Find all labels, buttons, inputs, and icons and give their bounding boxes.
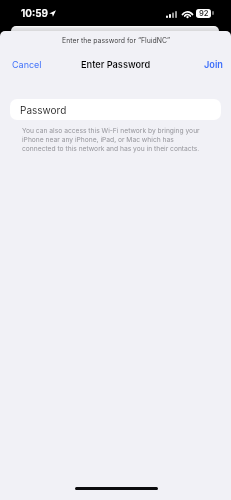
staticText: Enter Password <box>81 59 151 70</box>
staticText: You can also access this Wi-Fi network b… <box>22 127 200 153</box>
staticText: 92 <box>199 9 209 18</box>
staticText: Password <box>20 104 67 116</box>
staticText: Cancel <box>12 59 42 70</box>
staticText: 10:59 <box>21 7 48 19</box>
button[interactable]: Password text field <box>10 99 221 120</box>
button[interactable]: Join <box>192 55 231 74</box>
button[interactable]: Cancel <box>0 55 54 74</box>
staticText: Enter the password for “FluidNC” <box>62 36 170 44</box>
staticText: Join <box>204 59 223 70</box>
